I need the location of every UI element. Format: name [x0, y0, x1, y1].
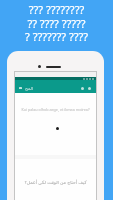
- button[interactable]: Video call: [81, 87, 84, 90]
- staticText: كيف أحتاج من الوقت لكي أعمل؟: [15, 179, 96, 185]
- staticText: Kui palau olhob aege, et ikmaa moirea?: [15, 107, 96, 112]
- staticText: ??? ???????? ?? ???? ????? ? ??????? ???…: [3, 2, 110, 44]
- button[interactable]: More options: [88, 87, 91, 90]
- button[interactable]: Back: [15, 80, 96, 93]
- button[interactable]: Back: [19, 87, 22, 89]
- staticText: المح: [25, 86, 34, 91]
